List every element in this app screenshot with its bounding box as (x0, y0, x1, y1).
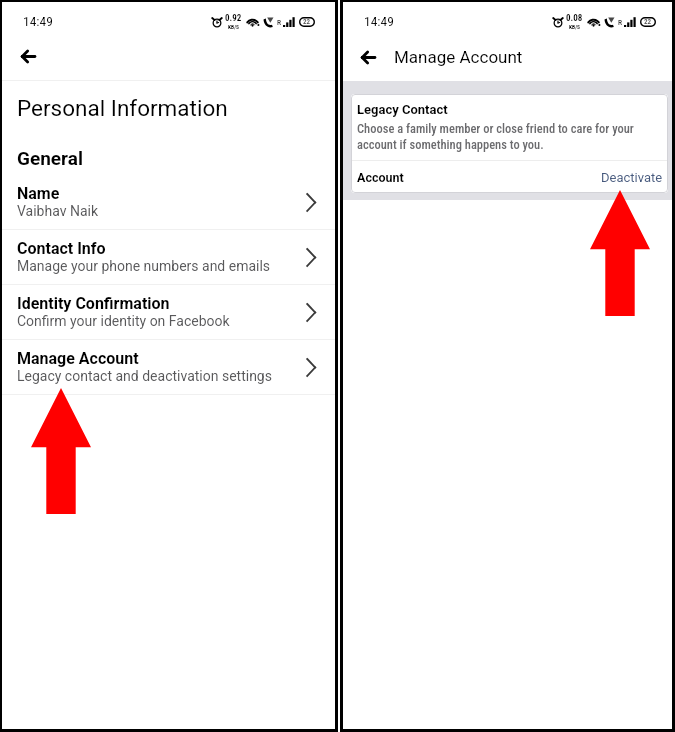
staticText: Legacy Contact (357, 102, 448, 117)
other: Back (360, 49, 377, 66)
staticText: Deactivate (601, 170, 663, 185)
staticText: Legacy contact and deactivation settings (17, 368, 272, 384)
staticText: 22 (303, 18, 311, 26)
staticText: 14:49 (23, 13, 53, 29)
button[interactable]: Identity Confirmation (2, 285, 335, 340)
staticText: General (17, 147, 83, 169)
staticText: Identity Confirmation (17, 294, 170, 313)
staticText: 14:49 (364, 13, 394, 29)
other: Back (20, 48, 37, 65)
staticText: 0.08 (566, 13, 583, 24)
button[interactable]: Manage Account (2, 340, 335, 395)
staticText: R (618, 19, 623, 27)
staticText: Manage your phone numbers and emails (17, 258, 271, 274)
staticText: Choose a family member or close friend t… (357, 121, 664, 152)
staticText: R (277, 19, 282, 27)
button[interactable]: Contact Info (2, 230, 335, 285)
staticText: 22 (644, 18, 652, 26)
staticText: Manage Account (17, 349, 139, 368)
staticText: Personal Information (17, 95, 228, 121)
staticText: Account (357, 170, 404, 185)
button[interactable]: Name (2, 175, 335, 230)
staticText: Contact Info (17, 239, 106, 258)
staticText: Name (17, 184, 60, 203)
staticText: Vaibhav Naik (17, 203, 99, 219)
staticText: KB/S (228, 24, 239, 30)
staticText: Manage Account (394, 47, 523, 67)
staticText: 0.92 (225, 13, 242, 24)
staticText: Confirm your identity on Facebook (17, 313, 230, 329)
button[interactable]: Account (351, 161, 668, 193)
staticText: KB/S (569, 24, 580, 30)
button[interactable]: Back (351, 40, 385, 74)
button[interactable]: Back (11, 39, 45, 73)
